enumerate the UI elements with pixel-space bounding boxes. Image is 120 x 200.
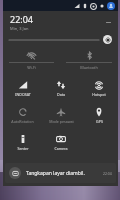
staticText: Wi-Fi [27, 65, 36, 70]
button[interactable]: INDOSAT [3, 75, 42, 102]
button[interactable]: Camera [42, 129, 80, 156]
button[interactable]: More options [103, 17, 113, 27]
button[interactable]: AutoRotation [3, 102, 42, 129]
button[interactable]: Wi-Fi [3, 50, 60, 72]
staticText: 22:04 [103, 171, 112, 176]
button[interactable]: Brightness [9, 33, 112, 46]
staticText: Senter [17, 146, 29, 151]
button[interactable]: User account [107, 2, 115, 10]
staticText: GPS [96, 119, 103, 124]
button[interactable]: Mode pesawat [42, 102, 80, 129]
button[interactable]: Bluetooth [60, 50, 118, 72]
button[interactable]: Tangkapan layar diambil. [5, 163, 116, 183]
staticText: INDOSAT [15, 92, 31, 97]
staticText: Mode pesawat [49, 119, 74, 124]
staticText: Tangkapan layar diambil. [26, 170, 85, 177]
staticText: Data [57, 92, 65, 97]
staticText: Min, 3 Jan [10, 26, 29, 31]
staticText: Hotspot [92, 92, 106, 97]
staticText: 22:04 [10, 13, 34, 25]
button[interactable]: Data [42, 75, 80, 102]
button[interactable]: GPS [80, 102, 118, 129]
button[interactable]: Hotspot [80, 75, 118, 102]
staticText: AutoRotation [11, 119, 34, 124]
staticText: Camera [54, 146, 68, 151]
staticText: Bluetooth [80, 65, 98, 70]
button[interactable]: Senter [3, 129, 42, 156]
